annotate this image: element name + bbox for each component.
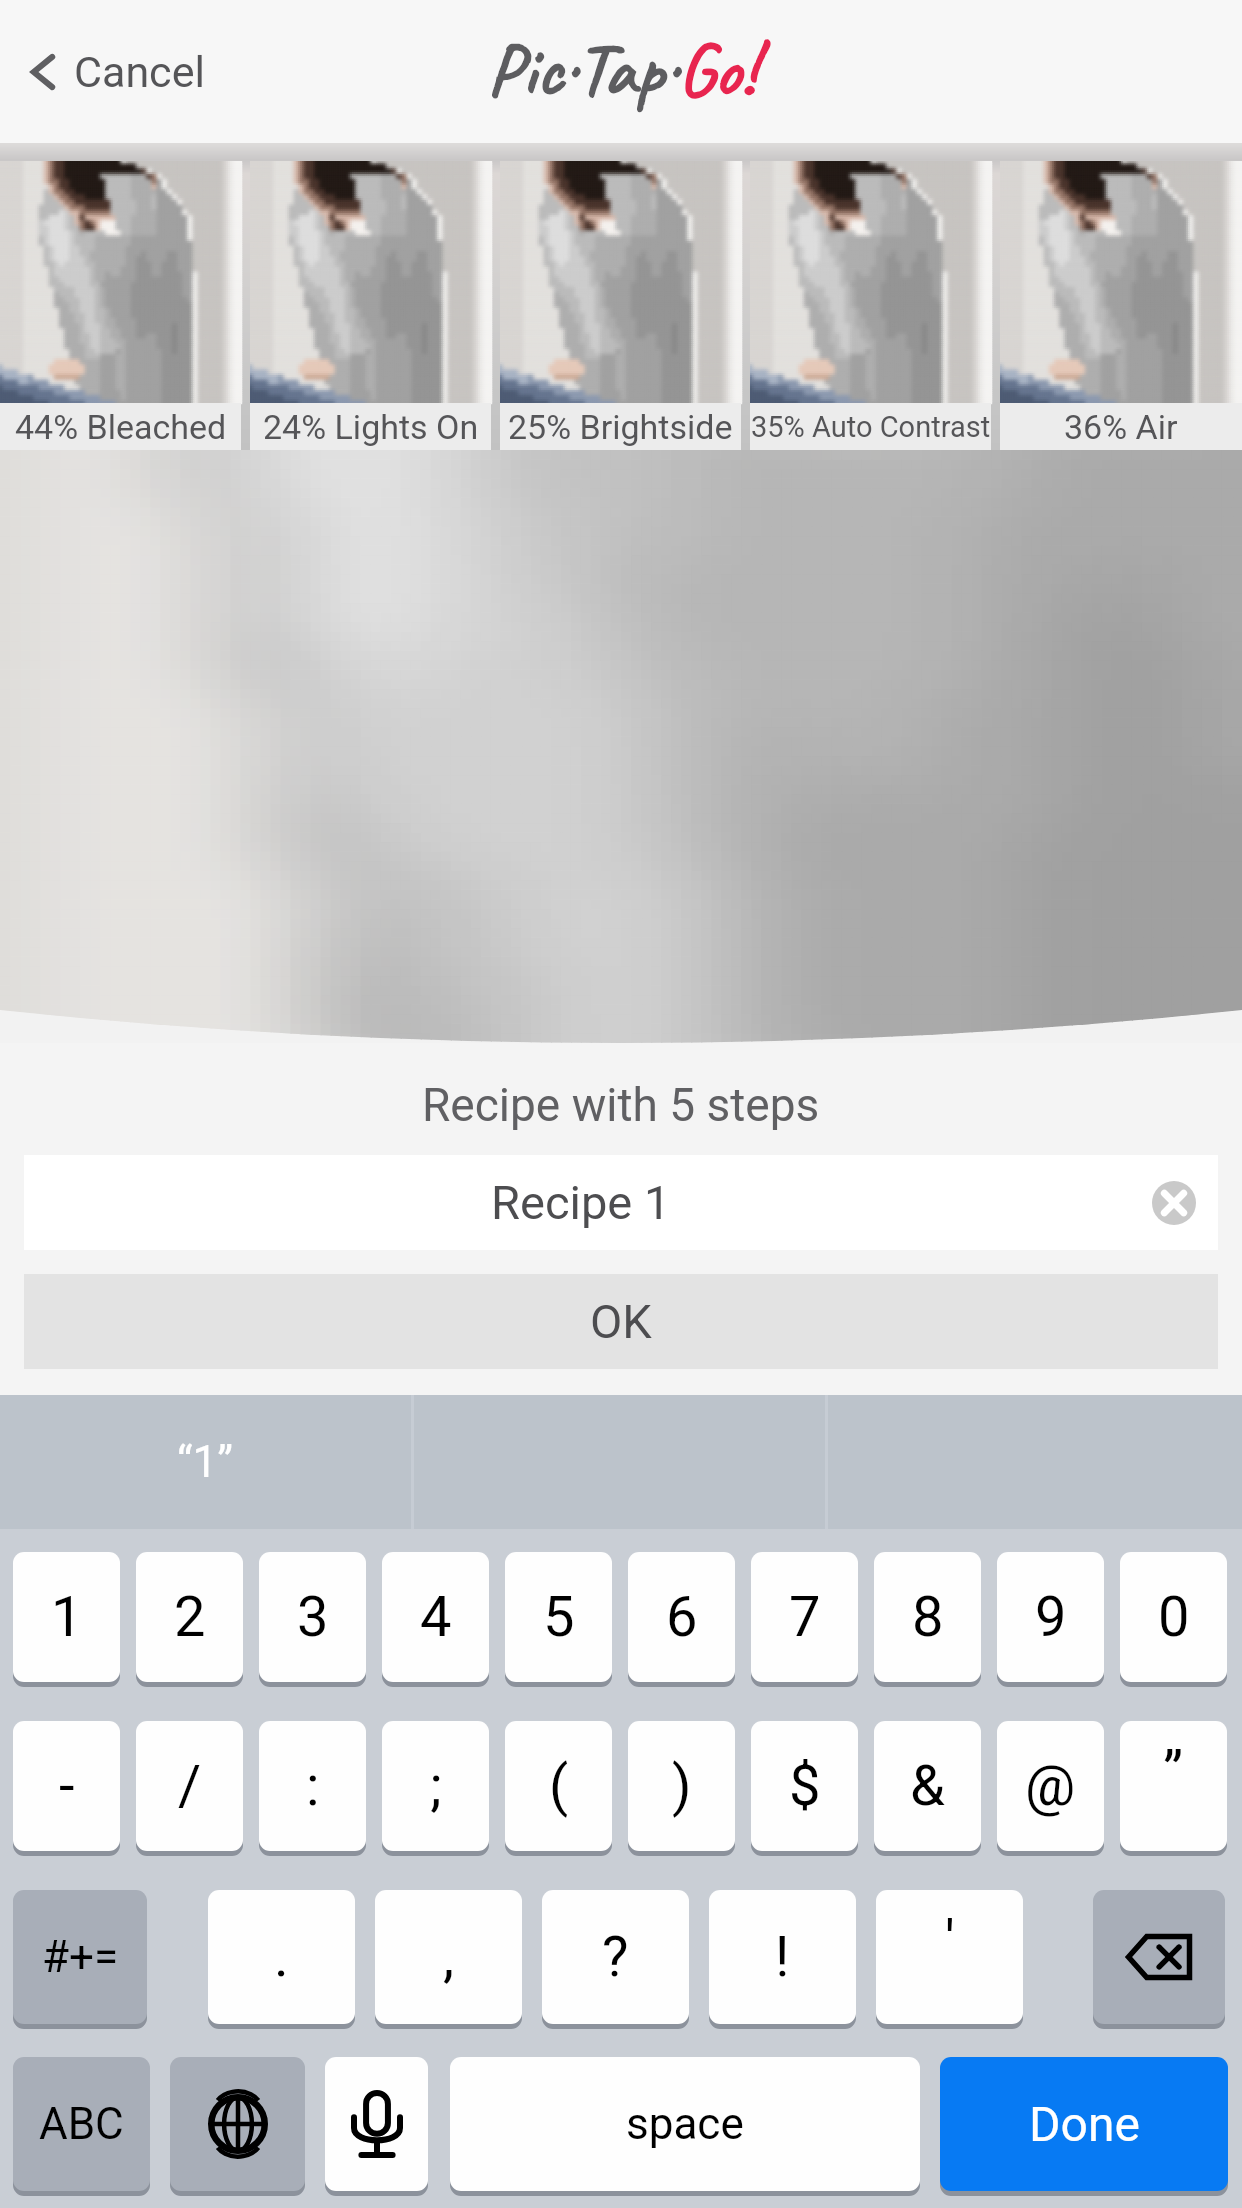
button[interactable]: 1 [13, 1552, 120, 1682]
staticText: / [178, 1753, 202, 1819]
staticText: #+= [42, 1931, 119, 1983]
button[interactable]: . [208, 1890, 355, 2024]
button[interactable]: Change keyboard language [170, 2057, 305, 2191]
button[interactable]: “1” [0, 1395, 411, 1529]
staticText: . [274, 1924, 289, 1990]
button[interactable]: ! [709, 1890, 856, 2024]
button[interactable]: 36% Air [1000, 161, 1242, 450]
staticText: 9 [1035, 1584, 1067, 1650]
button[interactable]: Backspace [1093, 1890, 1225, 2024]
staticText: ! [775, 1924, 790, 1990]
staticText: 35% Auto Contrast [751, 410, 991, 444]
staticText: Recipe 1 [491, 1175, 671, 1230]
staticText: ) [672, 1753, 692, 1819]
button[interactable]: 44% Bleached [0, 161, 241, 450]
button[interactable]: Cancel [22, 47, 205, 97]
button[interactable]: Recipe 1 [24, 1155, 1218, 1250]
button[interactable]: ? [542, 1890, 689, 2024]
staticText: , [443, 1924, 455, 1990]
button[interactable]: ' [876, 1890, 1023, 2024]
button[interactable]: 25% Brightside [500, 161, 741, 450]
button[interactable]: Voice input [325, 2057, 428, 2191]
staticText: Go! [678, 23, 756, 116]
staticText: 25% Brightside [508, 407, 733, 447]
staticText: 44% Bleached [15, 407, 227, 447]
button[interactable]: & [874, 1721, 981, 1851]
button[interactable]: ) [628, 1721, 735, 1851]
button[interactable]: 8 [874, 1552, 981, 1682]
staticText: $ [789, 1753, 821, 1819]
button[interactable]: 6 [628, 1552, 735, 1682]
staticText: 3 [297, 1584, 329, 1650]
button[interactable]: 24% Lights On [250, 161, 491, 450]
staticText: Cancel [74, 47, 205, 97]
staticText: 6 [666, 1584, 698, 1650]
button[interactable]: $ [751, 1721, 858, 1851]
button[interactable]: @ [997, 1721, 1104, 1851]
button[interactable]: #+= [13, 1890, 147, 2024]
staticText: 1 [51, 1584, 83, 1650]
staticText: Recipe with 5 steps [422, 1078, 820, 1132]
staticText: Pic·Tap· [487, 23, 678, 116]
button[interactable]: 2 [136, 1552, 243, 1682]
staticText: & [910, 1753, 945, 1819]
staticText: ( [549, 1753, 569, 1819]
staticText: 24% Lights On [263, 407, 479, 447]
button[interactable]: ( [505, 1721, 612, 1851]
button[interactable]: 7 [751, 1552, 858, 1682]
button[interactable]: ; [382, 1721, 489, 1851]
staticText: : [306, 1753, 320, 1819]
staticText: 4 [420, 1584, 452, 1650]
staticText: 5 [543, 1584, 575, 1650]
staticText: space [626, 2098, 744, 2150]
staticText: ABC [39, 2098, 124, 2150]
button[interactable]: 35% Auto Contrast [750, 161, 991, 450]
staticText: 36% Air [1064, 407, 1178, 447]
staticText: ' [945, 1908, 955, 1974]
staticText: ? [602, 1924, 629, 1990]
staticText: 2 [174, 1584, 206, 1650]
staticText: “1” [177, 1436, 234, 1488]
staticText: @ [1025, 1753, 1076, 1819]
staticText: OK [590, 1294, 652, 1349]
staticText: - [59, 1753, 75, 1819]
button[interactable]: 0 [1120, 1552, 1227, 1682]
staticText: Done [1029, 2096, 1140, 2152]
button[interactable]: - [13, 1721, 120, 1851]
button[interactable]: 9 [997, 1552, 1104, 1682]
staticText: ” [1163, 1739, 1184, 1805]
button[interactable]: , [375, 1890, 522, 2024]
staticText: 0 [1158, 1584, 1190, 1650]
button[interactable]: space [450, 2057, 920, 2191]
button[interactable]: 4 [382, 1552, 489, 1682]
button[interactable]: Done [940, 2057, 1228, 2191]
button[interactable]: : [259, 1721, 366, 1851]
button[interactable]: ABC [13, 2057, 150, 2191]
button[interactable]: ” [1120, 1721, 1227, 1851]
staticText: ; [430, 1753, 442, 1819]
button[interactable]: 3 [259, 1552, 366, 1682]
button[interactable]: OK [24, 1274, 1218, 1369]
staticText: 7 [789, 1584, 821, 1650]
staticText: 8 [912, 1584, 944, 1650]
button[interactable]: 5 [505, 1552, 612, 1682]
button[interactable]: / [136, 1721, 243, 1851]
button[interactable]: Clear text [1152, 1181, 1196, 1225]
